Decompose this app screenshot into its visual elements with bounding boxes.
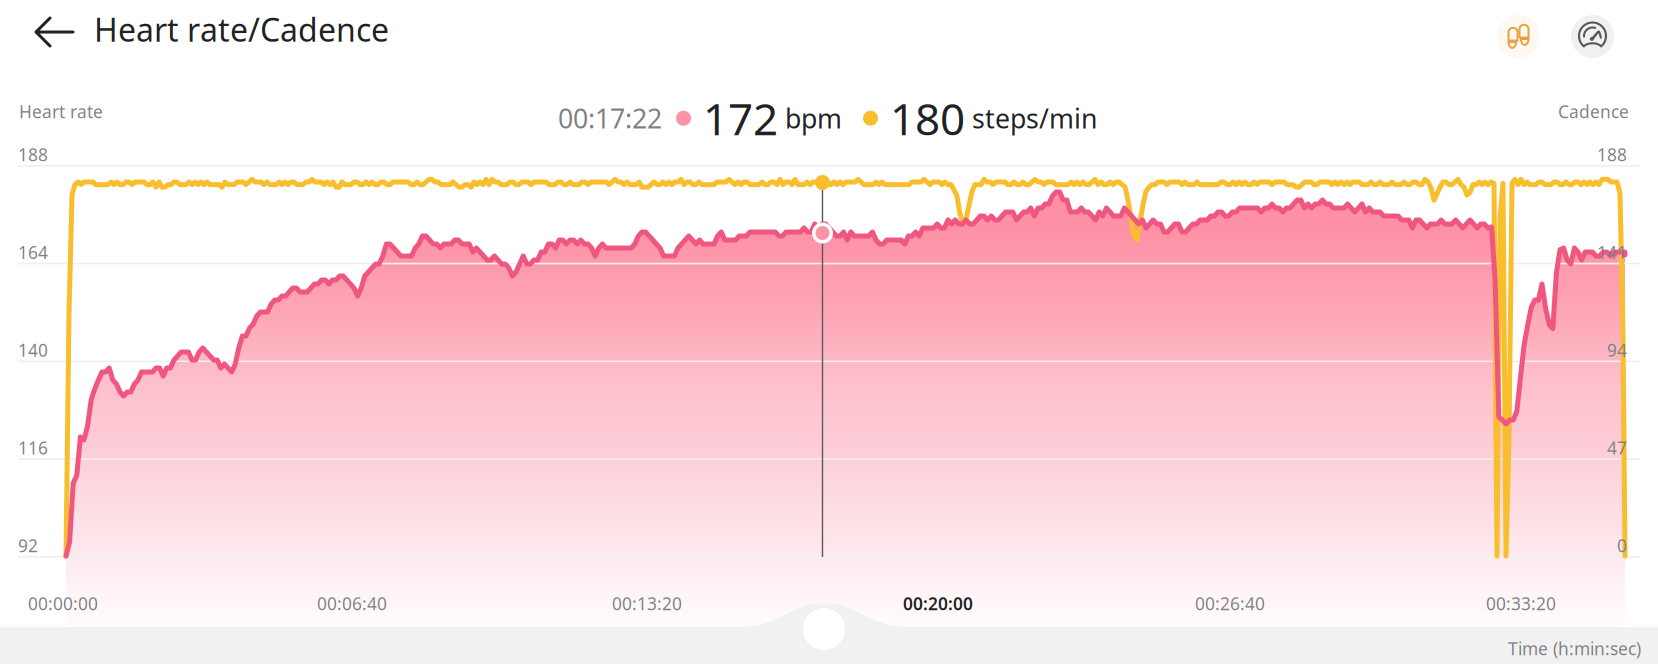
staticText: 00:20:00	[903, 592, 973, 615]
staticText: Heart rate	[19, 100, 103, 123]
staticText: 47	[1607, 436, 1627, 459]
staticText: 00:17:22	[558, 100, 662, 136]
staticText: 00:06:40	[317, 592, 387, 615]
staticText: 172	[703, 89, 778, 147]
staticText: Time (h:min:sec)	[1508, 637, 1641, 660]
staticText: 188	[18, 143, 48, 166]
staticText: 94	[1607, 338, 1627, 361]
staticText: 180	[890, 89, 965, 147]
staticText: Heart rate/Cadence	[94, 8, 389, 50]
staticText: 0	[1617, 534, 1627, 557]
staticText: steps/min	[965, 100, 1097, 136]
staticText: 00:26:40	[1195, 592, 1265, 615]
staticText: 164	[18, 241, 48, 264]
button[interactable]: Back	[19, 2, 90, 62]
staticText: 00:13:20	[612, 592, 682, 615]
staticText: 00:00:00	[28, 592, 98, 615]
button[interactable]: Steps	[1497, 15, 1540, 58]
staticText: bpm	[778, 100, 842, 136]
staticText: 92	[18, 534, 38, 557]
button[interactable]: Heart rate/Cadence	[94, 0, 389, 58]
staticText: 141	[1597, 241, 1627, 264]
staticText: 116	[18, 436, 48, 459]
button[interactable]: Speed	[1571, 15, 1614, 58]
staticText: 140	[18, 338, 48, 361]
staticText: 00:33:20	[1486, 592, 1556, 615]
staticText: Cadence	[1558, 100, 1629, 123]
staticText: 188	[1597, 143, 1627, 166]
